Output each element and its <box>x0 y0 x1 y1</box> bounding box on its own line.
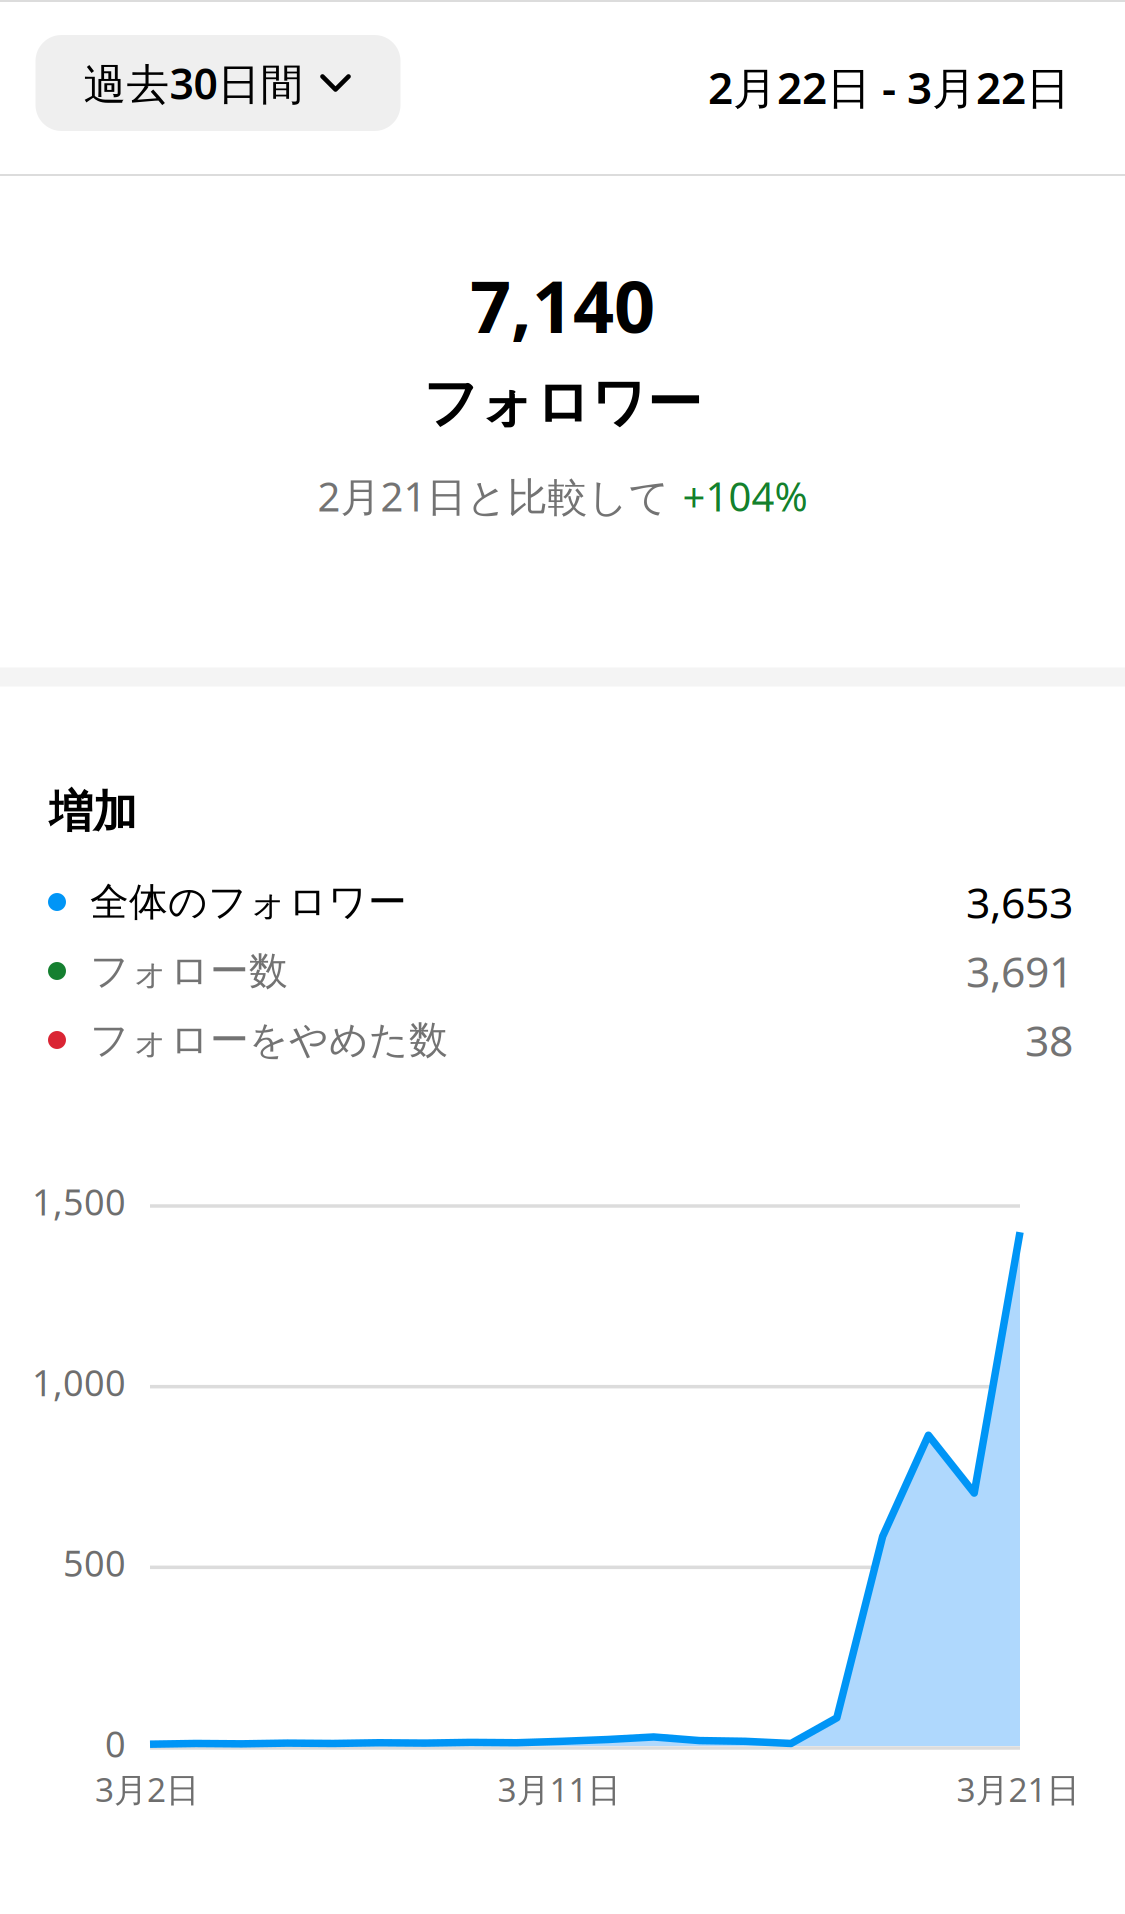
staticText: 3月11日 <box>497 1767 620 1811</box>
staticText: 3月2日 <box>95 1767 199 1811</box>
staticText: 1,000 <box>32 1358 126 1406</box>
staticText: 3,691 <box>966 943 1073 999</box>
staticText: 38 <box>1025 1012 1073 1068</box>
staticText: 3月21日 <box>956 1767 1079 1811</box>
staticText: 過去30日間 <box>83 55 303 111</box>
button[interactable]: 過去30日間 <box>35 35 400 131</box>
staticText: 7,140 <box>470 257 655 353</box>
staticText: フォロー数 <box>90 947 288 995</box>
staticText: 0 <box>105 1720 126 1767</box>
staticText: 1,500 <box>32 1178 126 1225</box>
staticText: 全体のフォロワー <box>90 878 407 926</box>
staticText: 増加 <box>49 785 137 839</box>
staticText: フォロワー <box>423 369 702 436</box>
staticText: 2月22日 - 3月22日 <box>708 58 1070 116</box>
staticText: フォローをやめた数 <box>90 1016 448 1064</box>
staticText: 3,653 <box>966 874 1073 930</box>
staticText: 2月21日と比較して <box>317 469 669 522</box>
staticText: 500 <box>63 1539 126 1587</box>
staticText: +104% <box>682 469 807 522</box>
